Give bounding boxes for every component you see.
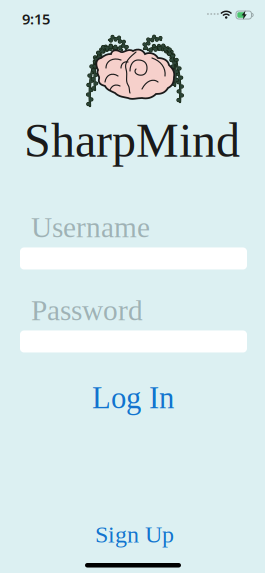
staticText: Username <box>31 211 150 243</box>
staticText: Sign Up <box>95 521 174 548</box>
staticText: SharpMind <box>24 114 240 167</box>
button[interactable]: Log In <box>92 381 174 415</box>
staticText: 9:15 <box>22 9 50 28</box>
button[interactable]: Username <box>20 211 247 265</box>
button[interactable]: Password <box>20 294 247 348</box>
staticText: Log In <box>92 381 174 415</box>
button[interactable]: Sign Up <box>95 521 174 548</box>
staticText: Password <box>31 294 143 326</box>
